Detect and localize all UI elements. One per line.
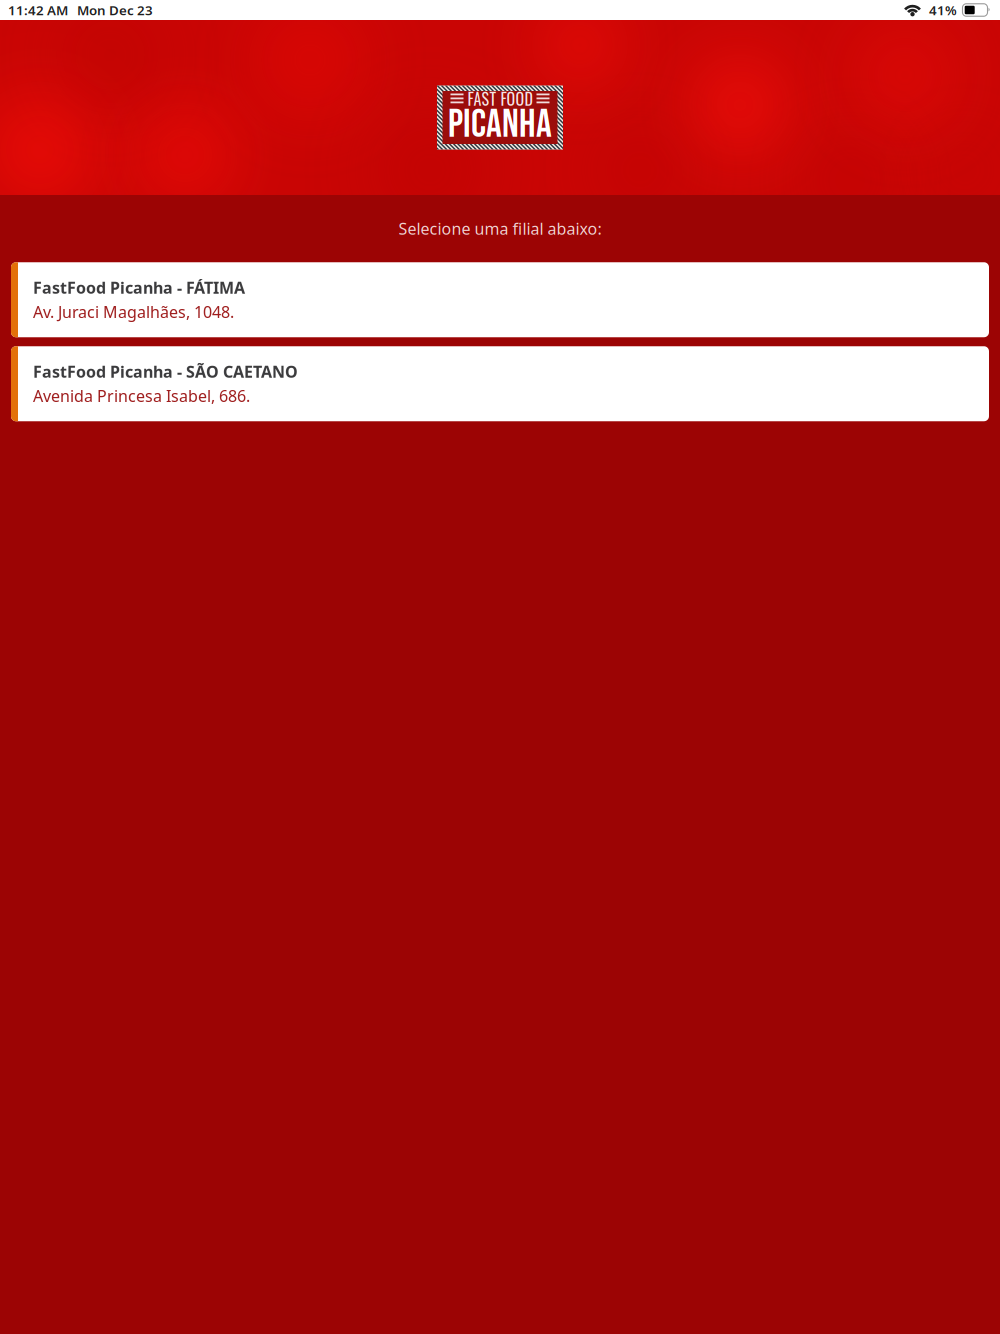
- staticText: Avenida Princesa Isabel, 686.: [33, 385, 250, 406]
- staticText: Mon Dec 23: [77, 1, 153, 19]
- staticText: FastFood Picanha - FÁTIMA: [33, 277, 245, 298]
- staticText: Selecione uma filial abaixo:: [398, 218, 601, 239]
- button[interactable]: FastFood Picanha - SÃO CAETANO: [11, 346, 989, 421]
- staticText: FAST FOOD: [467, 87, 532, 110]
- button[interactable]: FastFood Picanha - FÁTIMA: [11, 262, 989, 337]
- staticText: FastFood Picanha - SÃO CAETANO: [33, 361, 298, 382]
- staticText: Av. Juraci Magalhães, 1048.: [33, 301, 234, 322]
- staticText: 11:42 AM: [8, 1, 68, 19]
- staticText: PICANHA: [448, 101, 552, 149]
- staticText: 41%: [929, 1, 957, 19]
